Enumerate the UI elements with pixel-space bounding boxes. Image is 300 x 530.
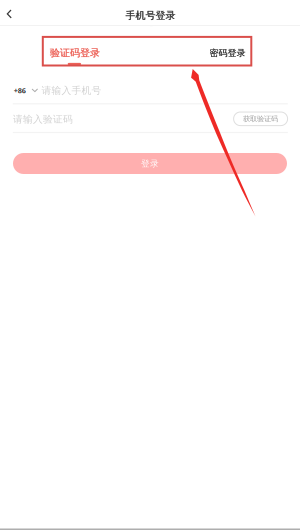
button[interactable]: 密码登录: [153, 26, 300, 68]
staticText: 验证码登录: [50, 47, 100, 59]
staticText: 验证码登录: [50, 47, 100, 59]
staticText: 手机号登录: [126, 9, 176, 22]
button[interactable]: 验证码登录: [0, 26, 150, 68]
staticText: 手机号登录: [125, 9, 175, 22]
staticText: 获取验证码: [243, 114, 278, 123]
staticText: +86: [14, 85, 26, 95]
staticText: 请输入验证码: [13, 113, 73, 125]
button[interactable]: Back: [0, 0, 26, 26]
staticText: 密码登录: [209, 47, 245, 59]
button[interactable]: 登录: [13, 153, 287, 174]
staticText: 密码登录: [210, 47, 246, 59]
staticText: 请输入手机号: [41, 84, 101, 97]
staticText: 登录: [141, 158, 159, 169]
button[interactable]: 获取验证码: [234, 112, 288, 126]
